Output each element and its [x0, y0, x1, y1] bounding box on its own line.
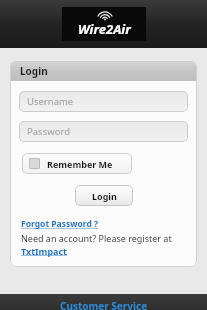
staticText: Remember Me [47, 158, 113, 170]
button[interactable]: Customer Service [0, 294, 207, 310]
staticText: Username [27, 95, 74, 108]
staticText: Password [27, 125, 70, 138]
staticText: Login [92, 190, 117, 202]
staticText: Need an account? Please register at [21, 232, 172, 244]
staticText: Customer Service [60, 299, 148, 310]
button[interactable]: Password [19, 121, 188, 142]
button[interactable]: Forgot Password ? [21, 218, 99, 230]
staticText: Wire2Air [78, 20, 131, 38]
staticText: Login [20, 64, 48, 78]
button[interactable]: TxtImpact [21, 245, 68, 257]
button[interactable]: Username [19, 91, 188, 112]
button[interactable]: Remember Me [22, 153, 132, 174]
button[interactable]: Login [75, 185, 133, 206]
